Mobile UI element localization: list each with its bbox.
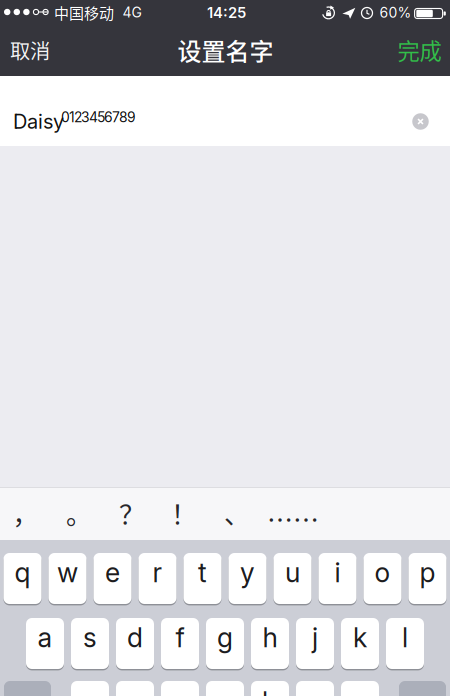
- button[interactable]: k: [341, 617, 379, 670]
- staticText: Daisy: [13, 109, 64, 133]
- button[interactable]: t: [183, 552, 221, 605]
- staticText: r: [152, 556, 162, 589]
- button[interactable]: 、: [205, 487, 269, 539]
- button[interactable]: b: [251, 680, 289, 696]
- staticText: a: [37, 621, 52, 654]
- button[interactable]: i: [318, 552, 356, 605]
- staticText: u: [285, 556, 300, 589]
- button[interactable]: h: [251, 617, 289, 670]
- button[interactable]: 取消: [0, 24, 62, 76]
- staticText: d: [127, 621, 143, 654]
- button[interactable]: m: [341, 680, 379, 696]
- button[interactable]: 完成: [387, 24, 450, 76]
- staticText: w: [57, 556, 78, 589]
- staticText: y: [240, 556, 255, 589]
- button[interactable]: g: [206, 617, 244, 670]
- staticText: s: [83, 621, 97, 654]
- button[interactable]: f: [161, 617, 199, 670]
- staticText: 取消: [10, 35, 50, 65]
- button[interactable]: l: [386, 617, 424, 670]
- staticText: g: [217, 621, 233, 654]
- staticText: ，: [12, 494, 38, 532]
- staticText: 14:25: [207, 3, 246, 21]
- button[interactable]: e: [93, 552, 131, 605]
- button[interactable]: w: [48, 552, 86, 605]
- button[interactable]: j: [296, 617, 334, 670]
- button[interactable]: n: [296, 680, 334, 696]
- staticText: e: [105, 556, 120, 589]
- staticText: ……: [267, 500, 319, 537]
- button[interactable]: 清除文本: [405, 106, 435, 136]
- staticText: t: [198, 556, 207, 589]
- button[interactable]: z: [71, 680, 109, 696]
- staticText: 中国移动: [54, 2, 114, 23]
- staticText: 、: [224, 494, 250, 532]
- staticText: f: [175, 621, 184, 654]
- button[interactable]: q: [3, 552, 41, 605]
- button[interactable]: y: [228, 552, 266, 605]
- staticText: b: [262, 685, 278, 696]
- staticText: h: [262, 621, 277, 654]
- button[interactable]: ？: [100, 487, 164, 539]
- button[interactable]: 。: [47, 487, 111, 539]
- button[interactable]: s: [71, 617, 109, 670]
- staticText: ！: [171, 494, 197, 532]
- staticText: 完成: [397, 34, 441, 66]
- staticText: o: [374, 556, 390, 589]
- button[interactable]: x: [116, 680, 154, 696]
- button[interactable]: Shift: [4, 680, 51, 696]
- button[interactable]: ，: [0, 487, 57, 539]
- staticText: p: [419, 556, 435, 589]
- button[interactable]: a: [26, 617, 64, 670]
- staticText: i: [334, 556, 340, 589]
- button[interactable]: ！: [152, 487, 216, 539]
- staticText: 0123456789: [61, 109, 136, 125]
- button[interactable]: p: [408, 552, 446, 605]
- staticText: 。: [66, 494, 92, 532]
- button[interactable]: v: [206, 680, 244, 696]
- button[interactable]: u: [273, 552, 311, 605]
- staticText: ？: [119, 494, 145, 532]
- staticText: q: [14, 556, 30, 589]
- button[interactable]: ……: [261, 487, 325, 539]
- button[interactable]: o: [363, 552, 401, 605]
- button[interactable]: c: [161, 680, 199, 696]
- button[interactable]: r: [138, 552, 176, 605]
- staticText: 设置名字: [177, 33, 273, 67]
- staticText: 60%: [379, 4, 411, 21]
- staticText: k: [353, 621, 367, 654]
- button[interactable]: Delete: [399, 680, 446, 696]
- button[interactable]: d: [116, 617, 154, 670]
- staticText: 4G: [122, 4, 141, 21]
- staticText: j: [312, 621, 318, 654]
- staticText: l: [402, 621, 408, 654]
